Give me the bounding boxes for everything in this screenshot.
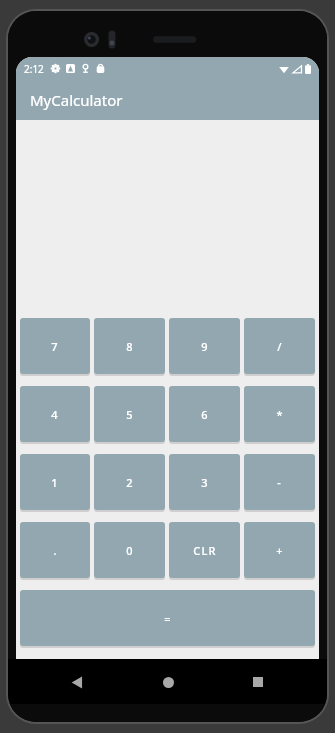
button[interactable]: Back [55,660,99,704]
staticText: CLR [193,543,217,558]
button[interactable]: * [244,386,315,442]
staticText: 5 [126,407,134,422]
staticText: 1 [51,475,59,490]
button[interactable]: - [244,454,315,510]
staticText: 9 [201,339,209,354]
staticText: - [277,475,282,490]
button[interactable]: Recent apps [236,660,280,704]
button[interactable]: . [20,522,90,578]
button[interactable]: 8 [94,318,165,374]
button[interactable]: 2 [94,454,165,510]
button[interactable]: 7 [20,318,90,374]
staticText: 8 [126,339,134,354]
button[interactable]: 4 [20,386,90,442]
button[interactable]: 9 [169,318,240,374]
staticText: 0 [126,543,134,558]
staticText: * [276,407,284,422]
staticText: MyCalculator [30,90,123,110]
staticText: . [53,543,58,558]
staticText: / [277,339,283,354]
button[interactable]: 0 [94,522,165,578]
staticText: 3 [201,475,209,490]
staticText: 4 [51,407,59,422]
staticText: 2:12 [24,62,44,76]
button[interactable]: 3 [169,454,240,510]
button[interactable]: 1 [20,454,90,510]
staticText: = [164,611,172,626]
button[interactable]: CLR [169,522,240,578]
button[interactable]: 5 [94,386,165,442]
button[interactable]: + [244,522,315,578]
button[interactable]: 6 [169,386,240,442]
staticText: + [276,543,284,558]
button[interactable]: / [244,318,315,374]
button[interactable]: Home [146,660,190,704]
staticText: 6 [201,407,209,422]
staticText: 7 [51,339,59,354]
staticText: 2 [126,475,134,490]
